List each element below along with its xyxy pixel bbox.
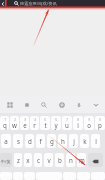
staticText: b: [58, 156, 62, 164]
staticText: e: [23, 121, 27, 129]
staticText: 9: [88, 118, 90, 122]
staticText: n: [69, 156, 73, 164]
button[interactable]: h: [58, 134, 67, 148]
button[interactable]: k: [80, 134, 89, 148]
staticText: l: [95, 137, 97, 145]
button[interactable]: 0: [95, 116, 105, 130]
staticText: c: [37, 156, 40, 164]
staticText: i: [77, 121, 79, 129]
button[interactable]: j: [69, 134, 78, 148]
button[interactable]: a: [1, 134, 11, 148]
button[interactable]: 9: [84, 116, 94, 130]
staticText: 7: [66, 118, 68, 122]
button[interactable]: Voice input: [71, 97, 86, 112]
button[interactable]: 4: [30, 116, 39, 130]
button[interactable]: 2: [10, 116, 19, 130]
button[interactable]: n: [66, 153, 75, 167]
button[interactable]: Back: [0, 0, 5, 7]
staticText: m: [79, 156, 85, 164]
button[interactable]: Hide keyboard: [88, 97, 103, 112]
staticText: t: [44, 121, 47, 129]
button[interactable]: z: [14, 153, 22, 167]
button[interactable]: Settings: [54, 97, 69, 112]
staticText: j: [73, 137, 75, 145]
staticText: s: [17, 137, 20, 145]
button[interactable]: 3: [20, 116, 29, 130]
button[interactable]: m: [77, 153, 86, 167]
button[interactable]: [91, 172, 105, 180]
staticText: 8: [77, 118, 79, 122]
button[interactable]: Clipboard: [19, 97, 34, 112]
staticText: 5: [44, 118, 46, 122]
button[interactable]: f: [36, 134, 45, 148]
button[interactable]: v: [44, 153, 53, 167]
button[interactable]: c: [34, 153, 42, 167]
button[interactable]: [63, 172, 76, 180]
staticText: v: [47, 156, 51, 164]
button[interactable]: 1: [0, 116, 9, 130]
button[interactable]: [24, 172, 35, 180]
button[interactable]: Shift: [0, 153, 12, 167]
button[interactable]: b: [55, 153, 64, 167]
staticText: d: [28, 137, 32, 145]
button[interactable]: 5: [40, 116, 50, 130]
button[interactable]: x: [24, 153, 32, 167]
staticText: g: [50, 137, 54, 145]
button[interactable]: 7: [62, 116, 72, 130]
staticText: 0: [99, 118, 101, 122]
staticText: 4: [34, 118, 36, 122]
staticText: h: [61, 137, 65, 145]
staticText: 3: [24, 118, 26, 122]
staticText: 2: [14, 118, 16, 122]
button[interactable]: Backspace: [88, 153, 103, 167]
staticText: p: [98, 121, 102, 129]
staticText: q: [3, 121, 7, 129]
staticText: k: [83, 137, 87, 145]
button[interactable]: l: [91, 134, 100, 148]
staticText: u: [65, 121, 69, 129]
button[interactable]: 8: [73, 116, 83, 130]
staticText: a: [4, 137, 8, 145]
button[interactable]: Keyboard layouts: [2, 97, 17, 112]
staticText: f: [39, 137, 42, 145]
staticText: o: [87, 121, 91, 129]
button[interactable]: [0, 172, 12, 180]
button[interactable]: g: [47, 134, 56, 148]
staticText: z: [17, 156, 20, 164]
staticText: 1: [4, 118, 6, 122]
staticText: x: [26, 156, 30, 164]
staticText: y: [54, 121, 58, 129]
staticText: 搜索应用/游戏/资讯: [20, 1, 57, 7]
button[interactable]: 搜索应用/游戏/资讯: [5, 0, 105, 7]
button[interactable]: s: [13, 134, 23, 148]
button[interactable]: [13, 172, 23, 180]
staticText: r: [33, 121, 36, 129]
button[interactable]: [77, 172, 90, 180]
button[interactable]: Search: [36, 97, 51, 112]
staticText: 6: [55, 118, 57, 122]
button[interactable]: d: [25, 134, 34, 148]
button[interactable]: 6: [51, 116, 61, 130]
staticText: 中/英: [1, 159, 11, 164]
staticText: w: [12, 121, 17, 129]
